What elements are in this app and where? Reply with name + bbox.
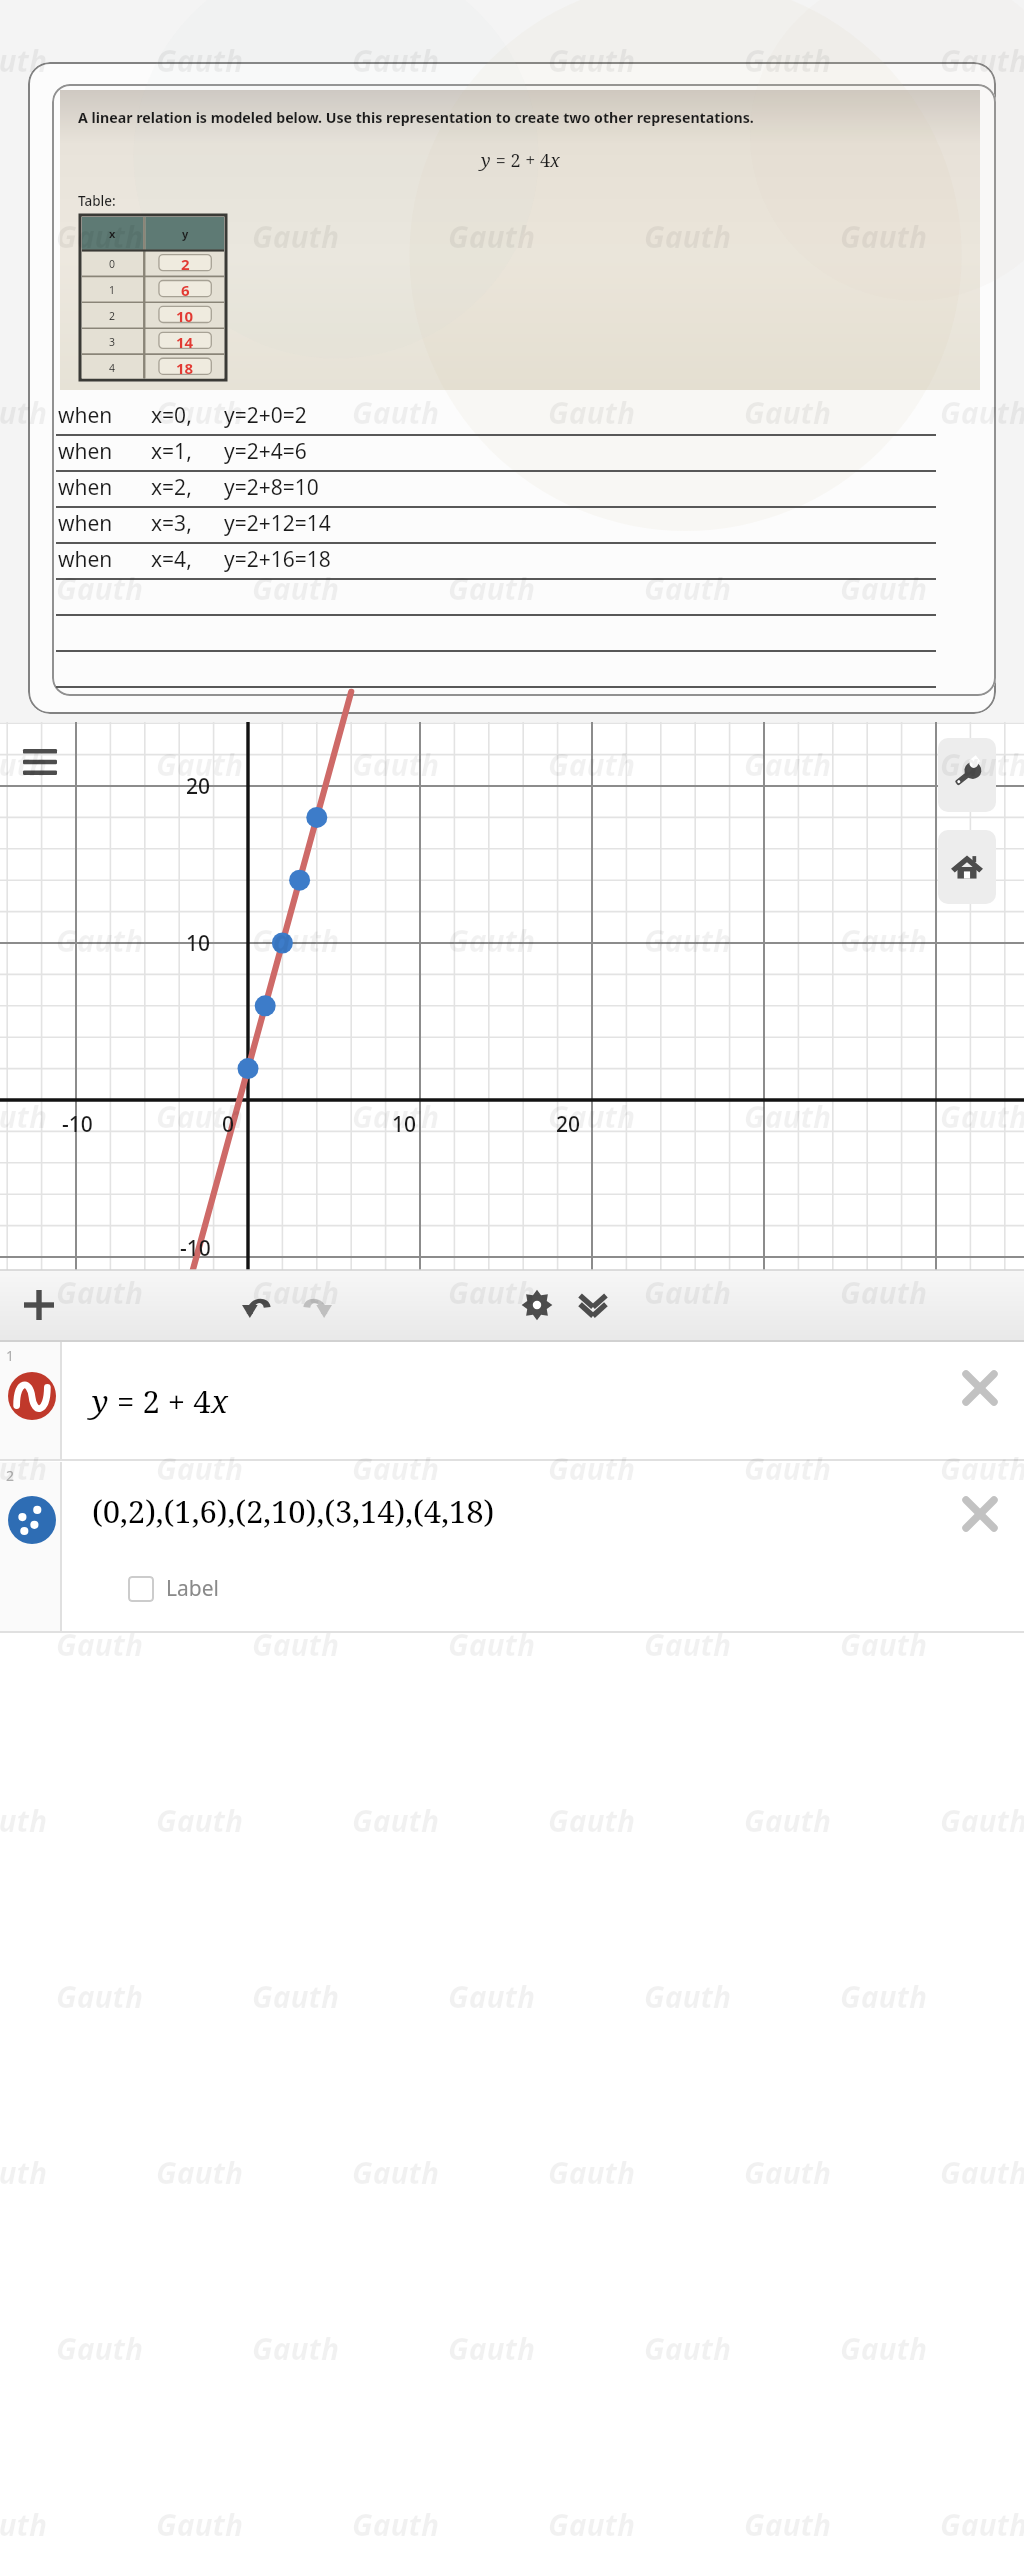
staticText: y bbox=[92, 1380, 109, 1422]
staticText: Gauth bbox=[352, 1096, 439, 1137]
staticText: Gauth bbox=[644, 1272, 731, 1313]
staticText: Gauth bbox=[56, 568, 143, 609]
staticText: Gauth bbox=[56, 2328, 143, 2369]
button[interactable]: Redo bbox=[288, 1276, 346, 1334]
button[interactable]: Settings bbox=[508, 1276, 566, 1334]
staticText: 1 bbox=[6, 1346, 15, 1365]
staticText: Gauth bbox=[644, 2328, 731, 2369]
staticText: Gauth bbox=[252, 1624, 339, 1665]
staticText: 0 bbox=[109, 257, 116, 271]
staticText: = 2 + 4 bbox=[491, 148, 550, 173]
staticText: Gauth bbox=[940, 40, 1024, 81]
staticText: Gauth bbox=[744, 2152, 831, 2193]
staticText: Gauth bbox=[840, 216, 927, 257]
staticText: Gauth bbox=[644, 568, 731, 609]
staticText: Gauth bbox=[548, 392, 635, 433]
staticText: 10 bbox=[392, 1110, 417, 1139]
staticText: Gauth bbox=[352, 1800, 439, 1841]
staticText: Gauth bbox=[448, 568, 535, 609]
staticText: Gauth bbox=[644, 920, 731, 961]
staticText: Gauth bbox=[448, 2328, 535, 2369]
staticText: Gauth bbox=[0, 392, 47, 433]
staticText: Gauth bbox=[56, 1272, 143, 1313]
staticText: x=3, bbox=[151, 509, 192, 538]
staticText: Gauth bbox=[744, 392, 831, 433]
staticText: Gauth bbox=[448, 1976, 535, 2017]
staticText: when bbox=[58, 401, 113, 430]
button[interactable]: Graph settings bbox=[938, 738, 996, 812]
staticText: 2 bbox=[109, 309, 116, 323]
staticText: Gauth bbox=[0, 2152, 47, 2193]
staticText: Gauth bbox=[940, 2152, 1024, 2193]
staticText: Gauth bbox=[548, 1448, 635, 1489]
staticText: Gauth bbox=[252, 2328, 339, 2369]
staticText: 4 bbox=[109, 361, 116, 375]
staticText: Gauth bbox=[940, 2504, 1024, 2545]
staticText: Gauth bbox=[644, 1976, 731, 2017]
staticText: Gauth bbox=[744, 1800, 831, 1841]
staticText: Gauth bbox=[0, 2504, 47, 2545]
staticText: Gauth bbox=[156, 1448, 243, 1489]
button[interactable]: Label bbox=[128, 1574, 219, 1603]
button[interactable]: 2 bbox=[0, 1462, 1024, 1632]
staticText: Gauth bbox=[744, 1448, 831, 1489]
staticText: Gauth bbox=[56, 1624, 143, 1665]
staticText: when bbox=[58, 437, 113, 466]
staticText: Gauth bbox=[448, 216, 535, 257]
staticText: 3 bbox=[109, 335, 116, 349]
staticText: 20 bbox=[186, 772, 211, 801]
staticText: Gauth bbox=[252, 216, 339, 257]
button[interactable]: Collapse panel bbox=[564, 1276, 622, 1334]
staticText: Gauth bbox=[56, 920, 143, 961]
button[interactable]: 1 bbox=[0, 1342, 1024, 1460]
staticText: Gauth bbox=[0, 1096, 47, 1137]
staticText: when bbox=[58, 545, 113, 574]
staticText: Gauth bbox=[352, 744, 439, 785]
staticText: Gauth bbox=[840, 568, 927, 609]
staticText: -10 bbox=[180, 1234, 211, 1263]
staticText: Gauth bbox=[840, 920, 927, 961]
staticText: x bbox=[550, 148, 560, 173]
button[interactable]: Delete expression 2 bbox=[950, 1484, 1010, 1544]
staticText: Gauth bbox=[156, 1800, 243, 1841]
staticText: Gauth bbox=[644, 216, 731, 257]
staticText: Gauth bbox=[548, 40, 635, 81]
staticText: -10 bbox=[62, 1110, 93, 1139]
staticText: Gauth bbox=[840, 2328, 927, 2369]
staticText: Gauth bbox=[56, 1976, 143, 2017]
staticText: y bbox=[481, 148, 491, 173]
staticText: Gauth bbox=[448, 920, 535, 961]
button[interactable]: Add expression bbox=[10, 1276, 68, 1334]
staticText: 20 bbox=[556, 1110, 581, 1139]
button[interactable]: Home bbox=[938, 830, 996, 904]
staticText: Gauth bbox=[352, 40, 439, 81]
staticText: Gauth bbox=[644, 1624, 731, 1665]
staticText: Gauth bbox=[352, 1448, 439, 1489]
staticText: Gauth bbox=[548, 1800, 635, 1841]
staticText: y=2+4=6 bbox=[224, 437, 307, 466]
staticText: 18 bbox=[176, 358, 194, 378]
staticText: Gauth bbox=[940, 1800, 1024, 1841]
staticText: Gauth bbox=[744, 40, 831, 81]
staticText: Gauth bbox=[940, 744, 1024, 785]
button[interactable]: Delete expression 1 bbox=[950, 1358, 1010, 1418]
staticText: y bbox=[182, 226, 189, 241]
staticText: when bbox=[58, 509, 113, 538]
staticText: Gauth bbox=[840, 1272, 927, 1313]
staticText: x bbox=[211, 1380, 228, 1422]
button[interactable]: Menu bbox=[12, 734, 68, 790]
staticText: (0,2),(1,6),(2,10),(3,14),(4,18) bbox=[92, 1490, 495, 1532]
staticText: Gauth bbox=[0, 744, 47, 785]
staticText: y=2+12=14 bbox=[224, 509, 331, 538]
staticText: Gauth bbox=[448, 1272, 535, 1313]
staticText: Gauth bbox=[252, 568, 339, 609]
staticText: 10 bbox=[186, 929, 211, 958]
staticText: Gauth bbox=[252, 920, 339, 961]
staticText: Gauth bbox=[56, 216, 143, 257]
staticText: Gauth bbox=[940, 1448, 1024, 1489]
staticText: 1 bbox=[109, 283, 116, 297]
staticText: Gauth bbox=[352, 2504, 439, 2545]
staticText: when bbox=[58, 473, 113, 502]
staticText: y=2+8=10 bbox=[224, 473, 319, 502]
button[interactable]: Undo bbox=[228, 1276, 286, 1334]
